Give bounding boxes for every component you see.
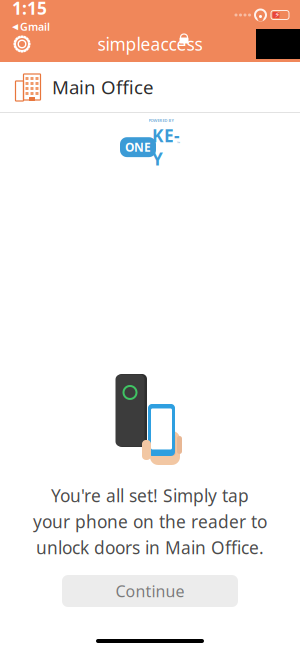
staticText: KEY	[152, 124, 180, 170]
staticText: 1:15	[12, 0, 47, 19]
button[interactable]: Settings	[0, 29, 44, 59]
staticText: Gmail	[20, 19, 50, 34]
staticText: Continue	[115, 580, 184, 602]
staticText: your phone on the reader to	[33, 510, 267, 533]
button[interactable]: Continue	[62, 575, 238, 607]
staticText: unlock doors in Main Office.	[36, 536, 264, 559]
button[interactable]: Main Office	[0, 62, 300, 112]
staticText: ONE	[125, 139, 151, 155]
staticText: You're all set! Simply tap	[51, 484, 249, 507]
staticText: simpleaccess	[97, 32, 202, 55]
staticText: ◀	[12, 22, 18, 31]
staticText: Main Office	[52, 75, 154, 99]
staticText: ™	[177, 140, 180, 146]
staticText: POWERED BY	[148, 118, 173, 123]
staticText: ⚡︎	[274, 10, 280, 20]
